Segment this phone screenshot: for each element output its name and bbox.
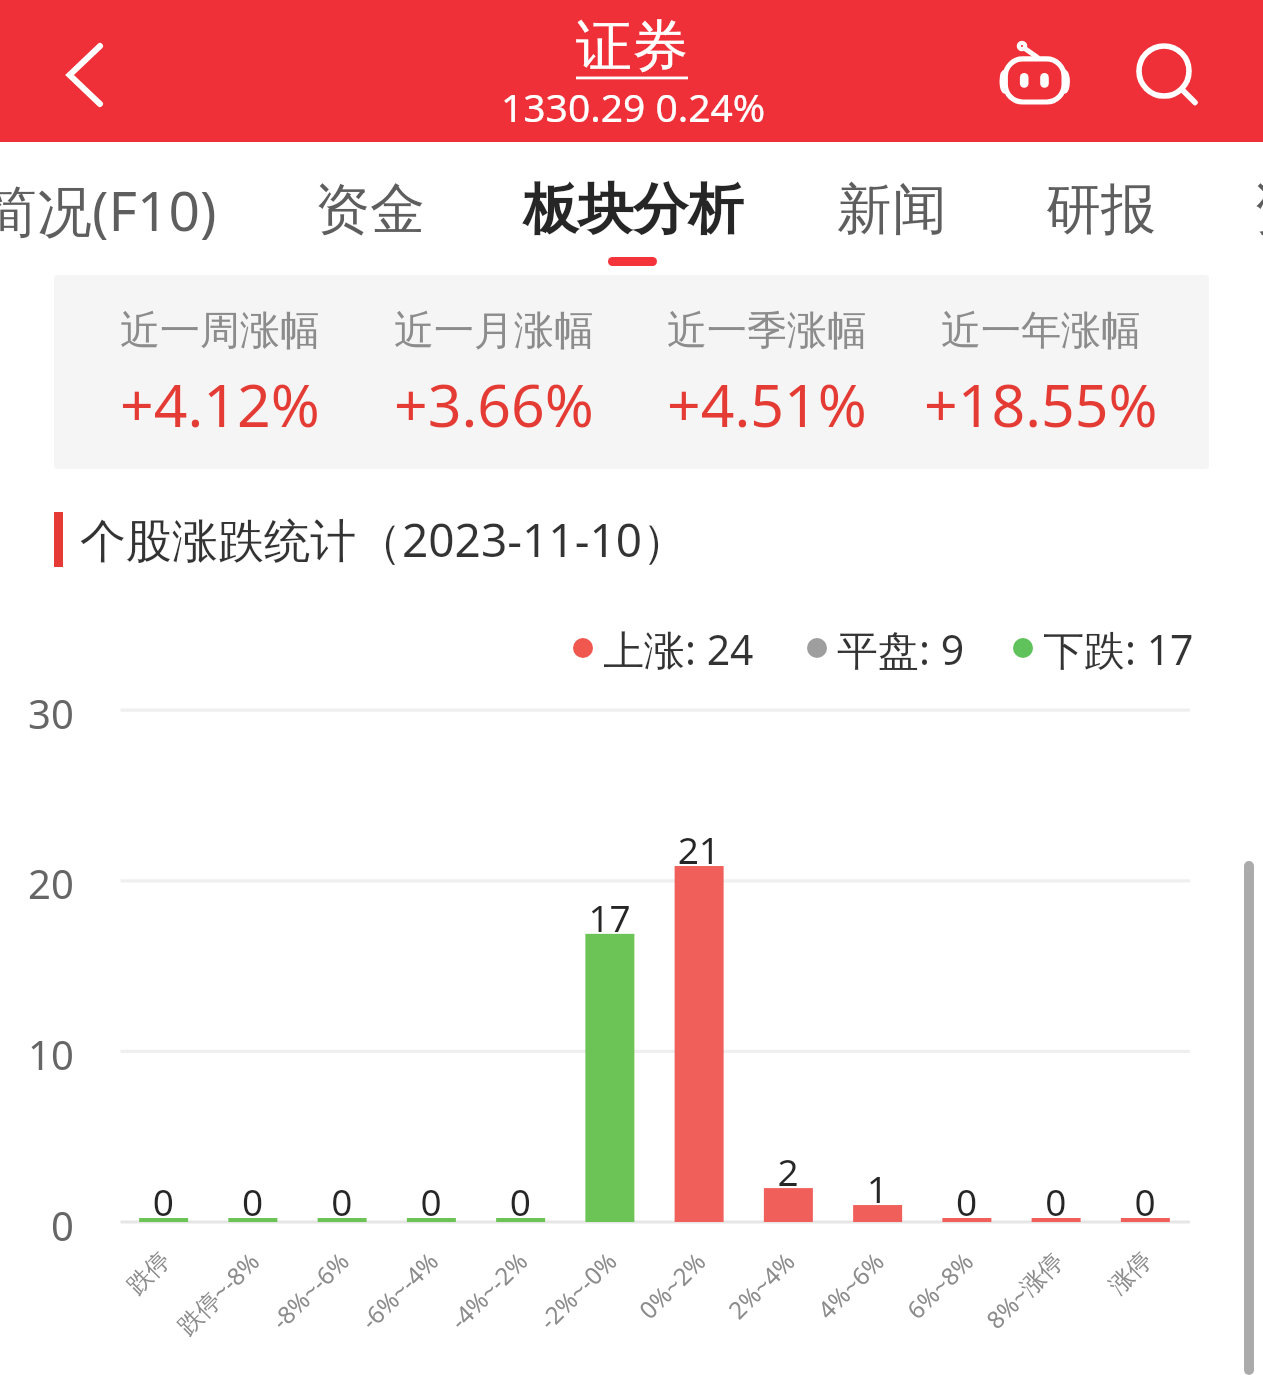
button[interactable]: 简况(F10) (0, 142, 279, 275)
staticText: 上涨: 24 (603, 621, 754, 677)
button[interactable]: 研报 (993, 142, 1208, 275)
button[interactable]: 板块分析 (470, 142, 795, 275)
staticText: +18.55% (924, 364, 1158, 444)
staticText: 近一周涨幅 (120, 305, 320, 355)
staticText: 1330.29 0.24% (501, 80, 766, 133)
staticText: 近一季涨幅 (667, 305, 867, 355)
button[interactable]: Back (28, 19, 140, 131)
staticText: 个股涨跌统计（2023-11-10） (80, 508, 689, 571)
staticText: +4.12% (120, 364, 320, 444)
staticText: 近一年涨幅 (941, 305, 1141, 355)
button[interactable]: 资金 (262, 142, 477, 275)
staticText: 证券 (576, 11, 688, 82)
button[interactable]: 资讯 (1200, 142, 1263, 275)
staticText: 新闻 (837, 175, 947, 244)
staticText: 资金 (315, 175, 425, 244)
staticText: 资讯 (1253, 175, 1263, 244)
staticText: 研报 (1046, 175, 1156, 244)
staticText: 下跌: 17 (1043, 621, 1194, 677)
staticText: +3.66% (394, 364, 594, 444)
staticText: +4.51% (667, 364, 867, 444)
staticText: 平盘: 9 (837, 621, 965, 677)
button[interactable]: Search (1114, 22, 1214, 122)
staticText: 简况(F10) (0, 172, 217, 247)
button[interactable]: 新闻 (784, 142, 999, 275)
button[interactable]: AI assistant (986, 26, 1082, 122)
staticText: 板块分析 (523, 175, 743, 244)
staticText: 近一月涨幅 (394, 305, 594, 355)
